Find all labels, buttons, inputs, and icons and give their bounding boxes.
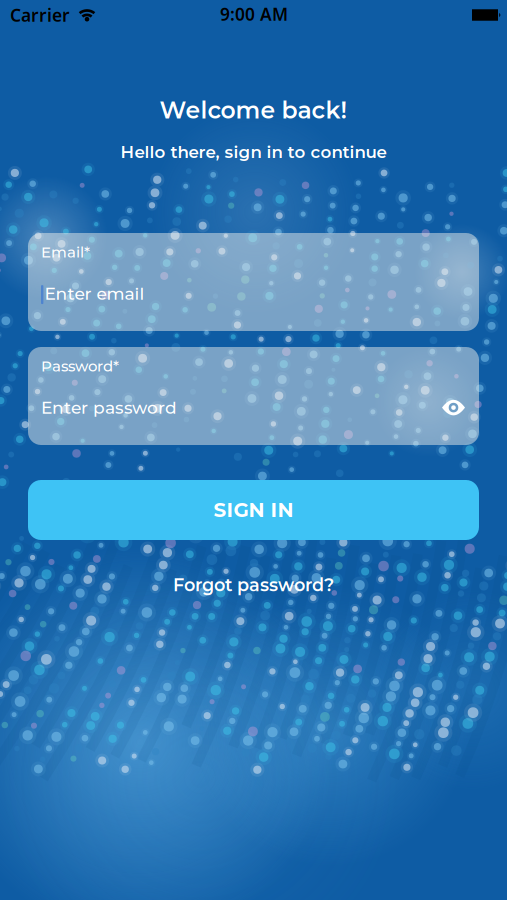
staticText: Carrier xyxy=(10,3,70,26)
staticText: Hello there, sign in to continue xyxy=(120,142,386,162)
staticText: Enter email xyxy=(44,283,144,304)
button[interactable]: Password* xyxy=(28,347,479,445)
staticText: Password* xyxy=(41,357,119,375)
staticText: 9:00 AM xyxy=(220,2,288,25)
button[interactable]: SIGN IN xyxy=(28,480,479,540)
button[interactable]: Email* xyxy=(28,233,479,331)
staticText: Forgot password? xyxy=(173,574,334,596)
staticText: Enter password xyxy=(41,397,177,418)
staticText: Email* xyxy=(41,243,90,261)
button[interactable]: Forgot password? xyxy=(173,574,334,596)
staticText: SIGN IN xyxy=(213,498,293,522)
staticText: Welcome back! xyxy=(159,96,347,124)
